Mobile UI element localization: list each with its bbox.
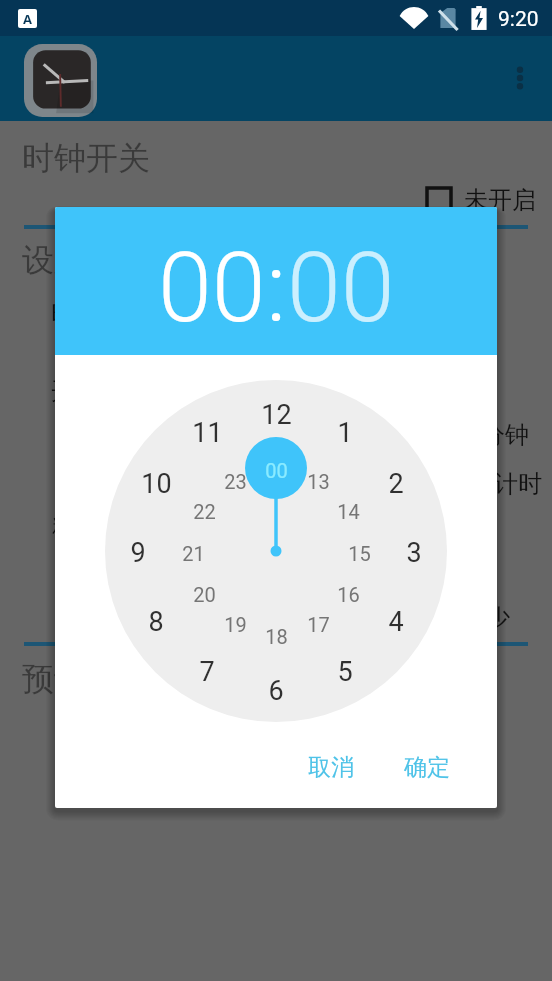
- staticText: 5: [337, 656, 353, 688]
- staticText: 16: [337, 583, 360, 606]
- button[interactable]: 00: [158, 231, 266, 345]
- staticText: 00: [265, 459, 288, 482]
- staticText: 开始时间: [51, 376, 147, 406]
- button[interactable]: More options: [496, 54, 544, 102]
- staticText: 13: [307, 470, 330, 493]
- staticText: 确定: [404, 753, 450, 782]
- staticText: 19: [224, 613, 247, 636]
- staticText: 取消: [308, 753, 354, 782]
- staticText: 00: [287, 231, 395, 345]
- staticText: 预设: [22, 659, 86, 699]
- staticText: 4: [388, 606, 404, 638]
- staticText: 1: [337, 417, 353, 449]
- staticText: 9:20: [498, 7, 539, 32]
- staticText: 11: [192, 417, 223, 449]
- staticText: 00: [158, 231, 266, 345]
- button[interactable]: 未开启: [425, 185, 536, 215]
- staticText: 7: [199, 656, 215, 688]
- staticText: 时间设置: [51, 299, 147, 329]
- staticText: 6: [268, 675, 284, 707]
- staticText: :: [266, 231, 287, 345]
- staticText: 8: [148, 606, 164, 638]
- staticText: 未开启: [464, 185, 536, 215]
- button[interactable]: 取消: [294, 743, 368, 792]
- staticText: 15: [348, 542, 371, 565]
- staticText: 23: [224, 470, 247, 493]
- staticText: 14: [337, 500, 360, 523]
- button[interactable]: 00: [287, 231, 395, 345]
- staticText: 21: [182, 542, 205, 565]
- staticText: 22: [193, 500, 216, 523]
- staticText: 12: [261, 399, 292, 431]
- staticText: 18: [265, 625, 288, 648]
- staticText: 9: [130, 537, 146, 569]
- button[interactable]: Clock app: [24, 44, 97, 117]
- staticText: 时钟开关: [22, 138, 150, 178]
- staticText: 分钟: [481, 420, 529, 450]
- staticText: 17: [307, 613, 330, 636]
- staticText: 2: [388, 468, 404, 500]
- staticText: 精确到秒: [52, 511, 148, 541]
- staticText: A: [23, 10, 32, 28]
- staticText: 设置: [22, 240, 86, 280]
- button[interactable]: 确定: [390, 743, 464, 792]
- staticText: 20: [193, 583, 216, 606]
- staticText: 10: [141, 468, 172, 500]
- staticText: 多少: [462, 603, 510, 633]
- staticText: 3: [406, 537, 422, 569]
- staticText: 累计时: [470, 469, 542, 499]
